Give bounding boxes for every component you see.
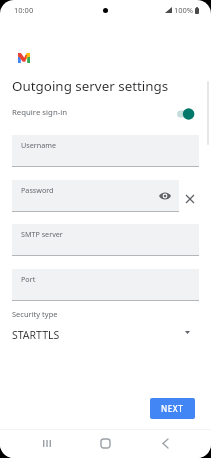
staticText: 100% <box>174 5 194 15</box>
button[interactable]: Require sign-in <box>0 104 211 124</box>
staticText: Password <box>21 185 54 195</box>
staticText: Username <box>21 140 56 150</box>
staticText: SMTP server <box>21 229 63 239</box>
button[interactable]: Recent apps <box>37 434 56 453</box>
button[interactable]: Security type <box>0 309 211 345</box>
button[interactable]: Password <box>12 180 179 212</box>
staticText: STARTTLS <box>12 328 60 342</box>
staticText: Require sign-in <box>12 107 68 118</box>
button[interactable]: Back <box>156 434 175 453</box>
button[interactable]: Username <box>12 135 199 167</box>
button[interactable] <box>177 107 197 121</box>
button[interactable]: SMTP server <box>12 224 199 256</box>
button[interactable]: Home <box>96 434 115 453</box>
button[interactable]: Port <box>12 269 199 301</box>
staticText: 10:00 <box>14 5 34 15</box>
staticText: Security type <box>12 309 58 319</box>
staticText: Port <box>21 274 36 284</box>
staticText: NEXT <box>161 403 184 414</box>
staticText: Outgoing server settings <box>12 77 169 95</box>
button[interactable]: NEXT <box>150 398 195 419</box>
button[interactable]: Show password <box>157 188 173 204</box>
button[interactable]: Clear <box>181 190 198 207</box>
